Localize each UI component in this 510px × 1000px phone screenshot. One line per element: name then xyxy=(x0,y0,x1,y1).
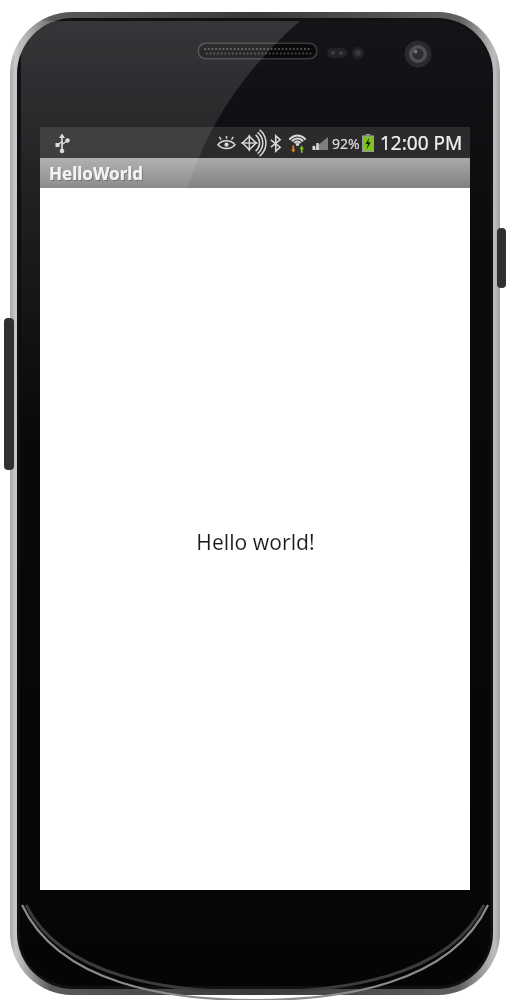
staticText: Hello world! xyxy=(196,528,315,557)
staticText: HelloWorld xyxy=(50,163,145,186)
staticText: 12:00 PM xyxy=(380,130,463,156)
button[interactable]: HelloWorld xyxy=(40,158,470,188)
staticText: HelloWorld xyxy=(49,162,144,185)
staticText: 92% xyxy=(332,134,360,153)
